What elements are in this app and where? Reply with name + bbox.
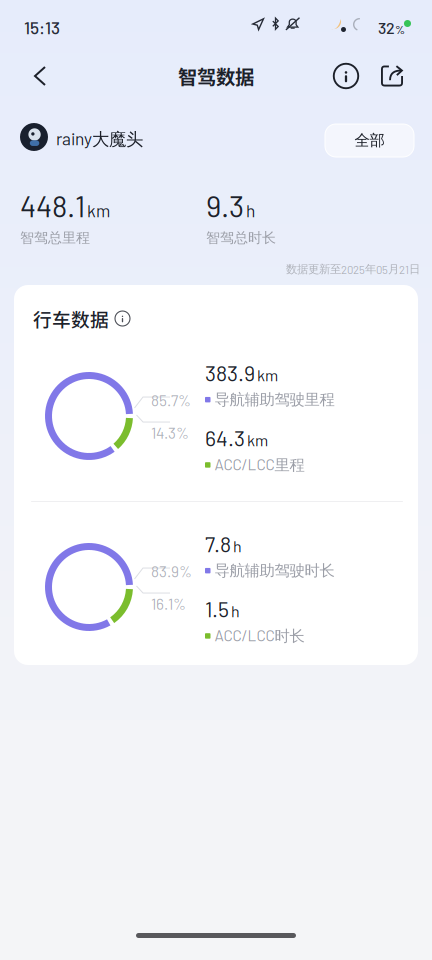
staticText: h bbox=[233, 536, 242, 555]
staticText: 导航辅助驾驶里程 bbox=[214, 390, 334, 409]
staticText: 383.9 bbox=[205, 360, 255, 386]
staticText: ACC/LCC里程 bbox=[214, 455, 304, 475]
staticText: 智驾总时长 bbox=[206, 229, 276, 247]
staticText: 15:13 bbox=[24, 17, 60, 38]
staticText: 64.3 bbox=[205, 425, 245, 451]
staticText: 数据更新至2025年05月21日 bbox=[286, 262, 420, 276]
button[interactable]: Back bbox=[18, 55, 62, 97]
staticText: 智驾数据 bbox=[178, 62, 254, 90]
button[interactable]: Info bbox=[325, 55, 367, 97]
staticText: 智驾总里程 bbox=[20, 229, 90, 247]
staticText: 83.9% bbox=[151, 562, 192, 580]
staticText: 448.1 bbox=[20, 188, 85, 223]
staticText: h bbox=[231, 601, 240, 620]
staticText: 85.7% bbox=[151, 391, 191, 409]
staticText: 14.3% bbox=[151, 423, 189, 442]
staticText: ACC/LCC时长 bbox=[214, 626, 304, 646]
button[interactable]: Share bbox=[371, 55, 413, 97]
staticText: 7.8 bbox=[205, 531, 231, 557]
staticText: 导航辅助驾驶时长 bbox=[214, 561, 334, 580]
staticText: 行车数据 bbox=[33, 305, 109, 332]
staticText: km bbox=[247, 430, 268, 449]
staticText: km bbox=[257, 365, 278, 384]
staticText: 全部 bbox=[354, 131, 384, 150]
staticText: h bbox=[246, 200, 255, 221]
staticText: 1.5 bbox=[205, 596, 229, 622]
button[interactable]: 全部 bbox=[325, 124, 414, 157]
staticText: rainy大魔头 bbox=[56, 128, 143, 150]
staticText: 16.1% bbox=[151, 594, 186, 613]
staticText: 9.3 bbox=[206, 188, 244, 223]
staticText: 32 bbox=[378, 18, 395, 37]
staticText: km bbox=[87, 200, 110, 221]
staticText: % bbox=[395, 22, 405, 36]
